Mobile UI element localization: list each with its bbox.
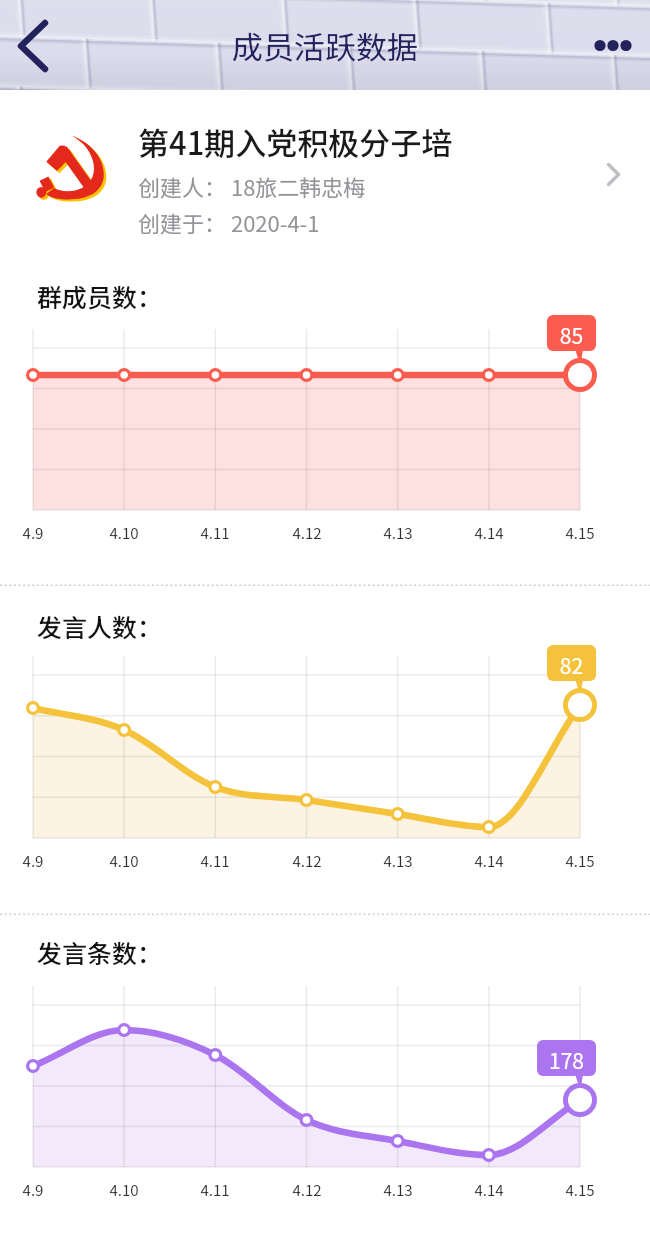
staticText: 成员活跃数据 — [232, 23, 418, 68]
staticText: 4.14 — [449, 522, 529, 544]
staticText: 4.15 — [540, 1179, 620, 1201]
staticText: 4.12 — [267, 522, 347, 544]
staticText: 178 — [537, 1045, 596, 1075]
staticText: 4.12 — [267, 1179, 347, 1201]
staticText: 4.10 — [84, 1179, 164, 1201]
staticText: 82 — [547, 650, 596, 680]
staticText: 4.9 — [0, 522, 73, 544]
button[interactable]: Back — [0, 0, 76, 90]
staticText: 创建人： 18旅二韩忠梅 — [138, 170, 366, 202]
staticText: 4.10 — [84, 850, 164, 872]
staticText: 创建于： 2020-4-1 — [138, 206, 320, 238]
staticText: 4.10 — [84, 522, 164, 544]
staticText: 4.12 — [267, 850, 347, 872]
staticText: 4.9 — [0, 1179, 73, 1201]
staticText: 4.11 — [175, 1179, 255, 1201]
staticText: 4.13 — [358, 522, 438, 544]
staticText: 4.11 — [175, 850, 255, 872]
staticText: 4.14 — [449, 1179, 529, 1201]
staticText: 第41期入党积极分子培 — [138, 119, 453, 164]
staticText: 4.14 — [449, 850, 529, 872]
staticText: 4.11 — [175, 522, 255, 544]
button[interactable]: More options — [574, 0, 650, 90]
staticText: 4.15 — [540, 522, 620, 544]
staticText: 4.9 — [0, 850, 73, 872]
staticText: 4.15 — [540, 850, 620, 872]
staticText: 发言条数： — [37, 934, 163, 970]
staticText: 4.13 — [358, 1179, 438, 1201]
staticText: 发言人数： — [37, 608, 163, 644]
staticText: 85 — [547, 320, 596, 350]
staticText: 4.13 — [358, 850, 438, 872]
button[interactable]: 第41期入党积极分子培 — [0, 90, 650, 270]
staticText: 群成员数： — [37, 278, 163, 314]
button[interactable]: Open group details — [588, 90, 650, 270]
